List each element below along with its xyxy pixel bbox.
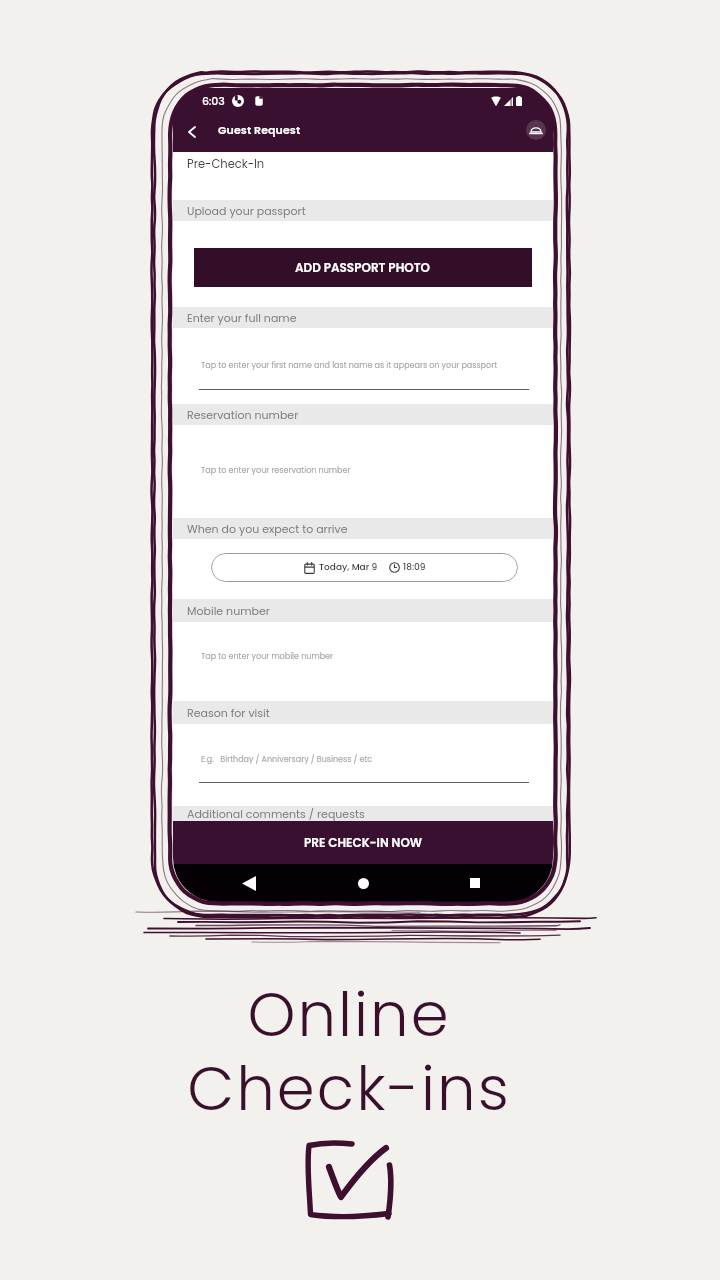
staticText: Upload your passport: [187, 203, 306, 218]
staticText: ADD PASSPORT PHOTO: [295, 259, 431, 276]
staticText: Reason for visit: [187, 705, 270, 720]
staticText: Additional comments / requests: [187, 806, 365, 821]
button[interactable]: Tap to enter your reservation number: [173, 425, 553, 518]
staticText: Tap to enter your mobile number: [201, 651, 334, 662]
staticText: Reservation number: [187, 407, 299, 422]
button[interactable]: PRE CHECK-IN NOW: [173, 821, 553, 864]
button[interactable]: Tap to enter your mobile number: [173, 622, 553, 701]
button[interactable]: Today, Mar 9: [211, 553, 518, 582]
staticText: Tap to enter your reservation number: [201, 465, 351, 476]
staticText: Enter your full name: [187, 310, 297, 325]
button[interactable]: E.g. Birthday / Anniversary / Business /…: [173, 724, 553, 806]
button[interactable]: Room service: [526, 120, 546, 140]
staticText: E.g. Birthday / Anniversary / Business /…: [201, 754, 373, 765]
button[interactable]: Home: [346, 866, 380, 900]
staticText: When do you expect to arrive: [187, 521, 348, 536]
button[interactable]: ADD PASSPORT PHOTO: [194, 248, 532, 287]
staticText: Online: [247, 972, 451, 1057]
staticText: Tap to enter your first name and last na…: [201, 360, 498, 371]
button[interactable]: Back: [232, 866, 266, 900]
staticText: Today, Mar 9: [319, 561, 378, 574]
staticText: Pre-Check-In: [187, 156, 265, 172]
staticText: 18:09: [403, 561, 426, 574]
button[interactable]: Tap to enter your first name and last na…: [173, 328, 553, 404]
staticText: Check-ins: [187, 1046, 511, 1131]
staticText: 6:03: [202, 93, 225, 108]
button[interactable]: Back: [178, 118, 206, 146]
staticText: Guest Request: [218, 122, 301, 137]
staticText: Mobile number: [187, 603, 270, 618]
staticText: PRE CHECK-IN NOW: [304, 834, 423, 851]
button[interactable]: Recents: [458, 866, 492, 900]
